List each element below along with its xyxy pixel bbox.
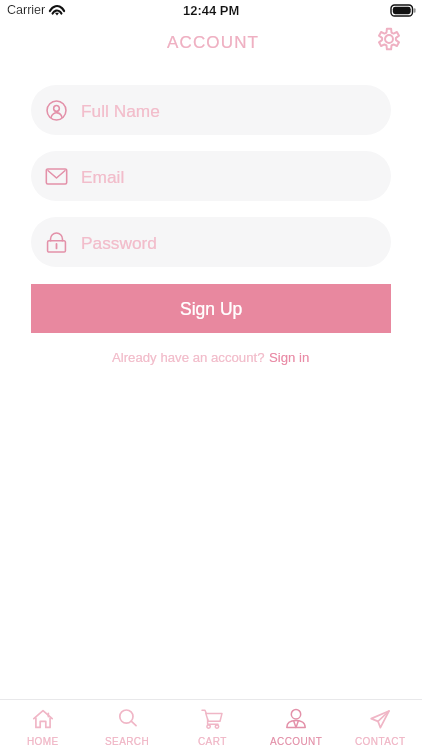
staticText: 12:44 PM: [183, 3, 240, 18]
staticText: ACCOUNT: [270, 736, 323, 747]
button[interactable]: HOME: [0, 700, 85, 750]
staticText: Password: [81, 233, 157, 252]
staticText: CONTACT: [355, 736, 406, 747]
button[interactable]: SEARCH: [85, 700, 170, 750]
button[interactable]: Sign Up: [31, 284, 391, 333]
button[interactable]: Settings: [375, 25, 403, 53]
staticText: Email: [81, 167, 125, 186]
staticText: Sign Up: [180, 299, 243, 319]
button[interactable]: CONTACT: [338, 700, 422, 750]
staticText: CART: [198, 736, 227, 747]
staticText: Full Name: [81, 101, 160, 120]
staticText: HOME: [27, 736, 59, 747]
button[interactable]: CART: [170, 700, 254, 750]
button[interactable]: Email: [31, 151, 391, 201]
staticText: SEARCH: [105, 736, 150, 747]
button[interactable]: Full Name: [31, 85, 391, 135]
button[interactable]: Password: [31, 217, 391, 267]
staticText: ACCOUNT: [167, 33, 260, 52]
staticText: Carrier: [7, 3, 46, 17]
button[interactable]: ACCOUNT: [254, 700, 338, 750]
staticText: Sign in: [269, 350, 310, 365]
button[interactable]: Sign in: [269, 350, 310, 365]
staticText: Already have an account?: [112, 350, 269, 365]
